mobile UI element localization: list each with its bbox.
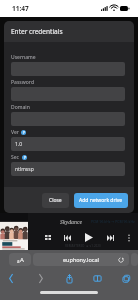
button[interactable]: Tab overview: [131, 253, 138, 266]
button[interactable]: Playlist: [42, 232, 53, 243]
button[interactable]: Reload: [117, 256, 125, 264]
staticText: a: [17, 258, 20, 264]
button[interactable]: Back: [4, 271, 19, 286]
staticText: ntlmssp: [15, 166, 34, 173]
button[interactable]: Previous: [61, 232, 73, 244]
staticText: Username: [11, 54, 36, 60]
staticText: Ver: [11, 129, 19, 135]
button[interactable]: Bookmarks: [90, 271, 105, 286]
staticText: Sec: [11, 154, 20, 160]
button[interactable]: Help: [22, 155, 27, 160]
button[interactable]: Share: [62, 271, 77, 286]
staticText: Add network drive: [79, 197, 123, 204]
button[interactable]: Close: [42, 193, 69, 208]
staticText: PCM 96 kHz → PCM 96 kHz: [91, 219, 135, 224]
staticText: REMASTERED ▪ v1.2020: [65, 244, 101, 248]
button[interactable]: Page settings: [9, 253, 31, 266]
button[interactable]: ntlmssp: [11, 162, 125, 176]
button[interactable]: Add network drive: [74, 193, 128, 208]
staticText: Password: [11, 79, 34, 85]
staticText: 1.0: [15, 141, 23, 148]
staticText: ?: [23, 130, 25, 135]
button[interactable]: More options: [124, 233, 134, 243]
staticText: A: [20, 256, 24, 264]
button[interactable]: Next: [104, 232, 116, 244]
staticText: ?: [24, 155, 26, 160]
staticText: 11:47: [12, 4, 29, 13]
staticText: Skydance: [60, 219, 82, 226]
staticText: Domain: [11, 104, 30, 110]
button[interactable]: Forward: [33, 271, 48, 286]
button[interactable]: Play: [81, 230, 96, 245]
staticText: Close: [49, 197, 62, 204]
button[interactable]: Tabs: [119, 271, 134, 286]
staticText: euphony.local: [63, 256, 99, 263]
staticText: Enter credentials: [11, 27, 63, 36]
button[interactable]: 1.0: [11, 137, 125, 151]
button[interactable]: Help: [21, 130, 26, 135]
button[interactable]: euphony.local: [33, 253, 129, 266]
